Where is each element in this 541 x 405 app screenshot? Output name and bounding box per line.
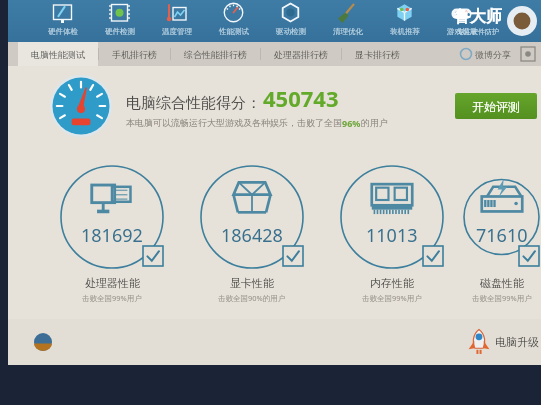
button[interactable]: 硬件体检 — [34, 0, 91, 42]
staticText: 游戏娱乐 — [447, 27, 477, 36]
button[interactable]: Selected 内存性能 — [423, 246, 443, 266]
staticText: 磁盘性能 — [480, 276, 524, 290]
staticText: 71610 — [476, 223, 528, 248]
staticText: 击败全国90%的用户 — [218, 293, 286, 303]
staticText: 处理器排行榜 — [274, 49, 328, 60]
button[interactable]: 性能测试 — [205, 0, 262, 42]
staticText: 击败全国99%用户 — [82, 293, 142, 303]
staticText: 专注硬件防护 — [457, 27, 499, 36]
staticText: 微博分享 — [475, 49, 511, 60]
staticText: 手机排行榜 — [112, 49, 157, 60]
staticText: 硬件体检 — [48, 27, 78, 36]
button[interactable]: 硬件检测 — [91, 0, 148, 42]
staticText: 击败全国99%用户 — [362, 293, 422, 303]
staticText: 本电脑可以流畅运行大型游戏及各种娱乐，击败了全国 — [126, 117, 342, 128]
button[interactable]: 186428 — [182, 164, 322, 303]
staticText: 击败全国99%用户 — [472, 293, 532, 303]
staticText: 11013 — [366, 223, 418, 248]
staticText: 鲁大师 — [454, 7, 502, 27]
staticText: 清理优化 — [333, 27, 363, 36]
staticText: 电脑升级 — [495, 335, 539, 349]
staticText: 开始评测 — [472, 99, 520, 114]
button[interactable]: Account — [507, 6, 537, 36]
staticText: 驱动检测 — [276, 27, 306, 36]
staticText: 450743 — [263, 83, 339, 113]
button[interactable]: 电脑升级 — [466, 329, 539, 355]
staticText: 的用户 — [361, 117, 388, 128]
button[interactable]: 71610 — [462, 164, 541, 303]
button[interactable]: 手机排行榜 — [99, 42, 170, 66]
button[interactable]: Selected 显卡性能 — [283, 246, 303, 266]
button[interactable]: Selected 磁盘性能 — [519, 246, 539, 266]
button[interactable]: 显卡排行榜 — [342, 42, 413, 66]
staticText: 处理器性能 — [85, 276, 140, 290]
button[interactable]: Screenshot — [521, 47, 535, 61]
staticText: 显卡排行榜 — [355, 49, 400, 60]
button[interactable]: Selected 处理器性能 — [143, 246, 163, 266]
button[interactable]: 181692 — [42, 164, 182, 303]
button[interactable]: 装机推荐 — [376, 0, 433, 42]
staticText: 综合性能排行榜 — [184, 49, 247, 60]
staticText: 显卡性能 — [230, 276, 274, 290]
button[interactable]: 驱动检测 — [262, 0, 319, 42]
button[interactable]: 游戏娱乐 — [433, 0, 490, 42]
button[interactable]: 开始评测 — [455, 93, 537, 119]
button[interactable]: 清理优化 — [319, 0, 376, 42]
button[interactable]: 电脑性能测试 — [18, 42, 98, 66]
button[interactable]: 11013 — [322, 164, 462, 303]
staticText: 性能测试 — [219, 27, 249, 36]
staticText: 181692 — [81, 223, 143, 248]
button[interactable]: Logo — [34, 333, 52, 351]
staticText: 装机推荐 — [390, 27, 420, 36]
staticText: 电脑综合性能得分： — [126, 94, 261, 113]
staticText: 硬件检测 — [105, 27, 135, 36]
staticText: 内存性能 — [370, 276, 414, 290]
button[interactable]: 综合性能排行榜 — [171, 42, 260, 66]
button[interactable]: 温度管理 — [148, 0, 205, 42]
staticText: 温度管理 — [162, 27, 192, 36]
staticText: 电脑性能测试 — [31, 49, 85, 60]
staticText: 186428 — [221, 223, 283, 248]
button[interactable]: 微博分享 — [460, 48, 511, 60]
staticText: 96% — [342, 117, 361, 129]
button[interactable]: 处理器排行榜 — [261, 42, 341, 66]
